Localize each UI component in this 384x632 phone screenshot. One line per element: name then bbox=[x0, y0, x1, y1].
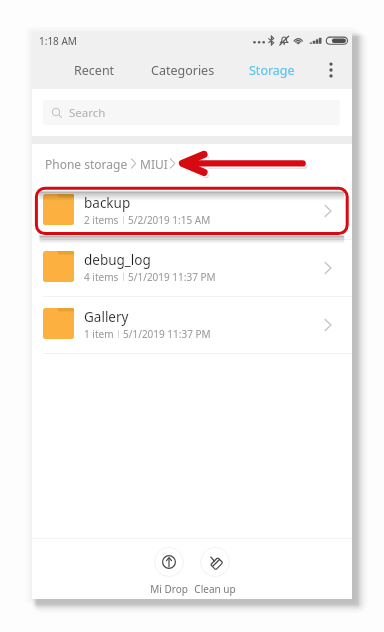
staticText: Categories bbox=[151, 62, 215, 79]
staticText: Clean up bbox=[194, 582, 236, 596]
staticText: 2 items bbox=[84, 213, 119, 227]
staticText: 1:18 AM bbox=[39, 34, 77, 48]
button[interactable]: Search bbox=[43, 100, 340, 125]
staticText: 5/1/2019 11:37 PM bbox=[128, 270, 216, 284]
staticText: 4 items bbox=[84, 270, 119, 284]
staticText: 1 item bbox=[84, 327, 114, 341]
button[interactable]: debug_log bbox=[32, 240, 352, 296]
button[interactable]: Categories bbox=[138, 57, 227, 89]
button[interactable]: Phone storage bbox=[45, 156, 128, 172]
button[interactable]: Storage bbox=[227, 57, 316, 89]
button[interactable]: MIUI bbox=[140, 156, 168, 172]
button[interactable]: Clean up bbox=[192, 539, 238, 599]
button[interactable]: Mi Drop bbox=[146, 539, 192, 599]
button[interactable]: More options bbox=[316, 57, 352, 89]
staticText: Recent bbox=[74, 62, 115, 79]
staticText: Search bbox=[69, 105, 106, 121]
staticText: 5/1/2019 11:37 PM bbox=[123, 327, 211, 341]
button[interactable]: Gallery bbox=[32, 297, 352, 353]
staticText: debug_log bbox=[84, 251, 151, 269]
button[interactable]: Recent bbox=[50, 57, 138, 89]
staticText: Gallery bbox=[84, 308, 129, 326]
staticText: Storage bbox=[249, 62, 295, 79]
button[interactable]: backup bbox=[32, 183, 352, 239]
staticText: backup bbox=[84, 194, 131, 212]
staticText: 5/2/2019 1:15 AM bbox=[128, 213, 211, 227]
staticText: Mi Drop bbox=[150, 582, 188, 596]
